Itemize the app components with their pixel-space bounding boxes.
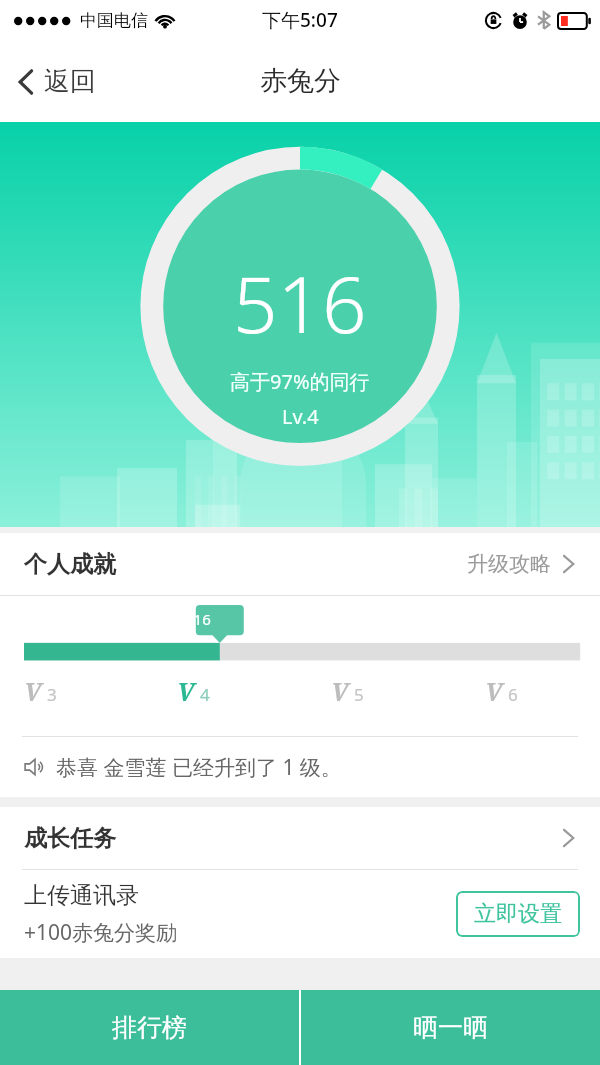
staticText: 返回 <box>44 65 96 98</box>
staticText: 立即设置 <box>474 900 562 928</box>
staticText: V <box>177 674 195 708</box>
button[interactable]: 恭喜 金雪莲 已经升到了 1 级。 <box>0 737 600 797</box>
button[interactable]: 立即设置 <box>456 891 580 937</box>
staticText: 4 <box>200 683 210 706</box>
staticText: 赤兔分 <box>260 64 341 98</box>
staticText: 3 <box>47 683 57 706</box>
staticText: 恭喜 金雪莲 已经升到了 1 级。 <box>56 753 342 782</box>
staticText: 6 <box>508 683 518 706</box>
staticText: 高于97%的同行 <box>230 368 370 395</box>
button[interactable]: 晒一晒 <box>301 990 600 1065</box>
button[interactable]: 成长任务 <box>0 807 600 869</box>
button[interactable]: 个人成就 <box>0 533 600 595</box>
staticText: 排行榜 <box>112 1012 187 1043</box>
staticText: V <box>24 674 42 708</box>
staticText: V <box>331 674 349 708</box>
staticText: 516 <box>185 609 211 629</box>
staticText: 中国电信 <box>80 10 148 31</box>
staticText: 516 <box>233 250 367 356</box>
button[interactable]: 排行榜 <box>0 990 299 1065</box>
staticText: 晒一晒 <box>413 1012 488 1043</box>
staticText: +100赤兔分奖励 <box>24 918 178 947</box>
button[interactable]: 返回 <box>0 55 114 108</box>
staticText: Lv.4 <box>282 403 319 430</box>
staticText: V <box>485 674 503 708</box>
staticText: 成长任务 <box>24 824 116 853</box>
staticText: 5 <box>354 683 364 706</box>
staticText: 个人成就 <box>24 550 116 579</box>
staticText: 下午5:07 <box>262 7 338 33</box>
staticText: 上传通讯录 <box>24 881 139 910</box>
staticText: 升级攻略 <box>467 551 551 577</box>
